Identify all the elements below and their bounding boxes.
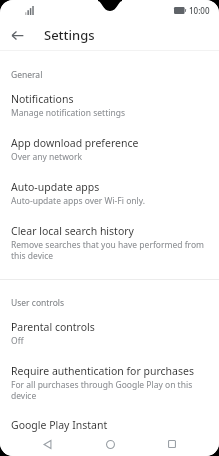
button[interactable]: Back bbox=[32, 432, 62, 456]
button[interactable]: Auto-update apps bbox=[0, 180, 219, 207]
staticText: Clear local search history bbox=[11, 224, 134, 238]
button[interactable]: Home bbox=[95, 432, 125, 456]
staticText: Off bbox=[11, 335, 24, 347]
staticText: Remove searches that you have performed … bbox=[11, 239, 209, 261]
staticText: Notifications bbox=[11, 92, 74, 106]
button[interactable]: Notifications bbox=[0, 92, 219, 119]
staticText: Over any network bbox=[11, 151, 83, 163]
button[interactable]: Clear local search history bbox=[0, 224, 219, 261]
staticText: 10:00 bbox=[189, 5, 210, 16]
button[interactable]: Require authentication for purchases bbox=[0, 364, 219, 401]
staticText: Parental controls bbox=[11, 320, 95, 334]
button[interactable]: Parental controls bbox=[0, 320, 219, 347]
staticText: Settings bbox=[44, 26, 95, 44]
staticText: User controls bbox=[11, 297, 219, 309]
staticText: Auto-update apps over Wi-Fi only. bbox=[11, 195, 146, 207]
staticText: Google Play Instant bbox=[11, 418, 108, 432]
staticText: Auto-update apps bbox=[11, 180, 100, 194]
button[interactable]: App download preference bbox=[0, 136, 219, 163]
staticText: General bbox=[11, 69, 219, 81]
staticText: App download preference bbox=[11, 136, 139, 150]
button[interactable]: Back bbox=[6, 24, 28, 46]
staticText: Require authentication for purchases bbox=[11, 364, 194, 378]
button[interactable]: Recent apps bbox=[157, 432, 187, 456]
staticText: For all purchases through Google Play on… bbox=[11, 379, 209, 401]
button[interactable]: Google Play Instant bbox=[0, 418, 219, 432]
staticText: Manage notification settings bbox=[11, 107, 125, 119]
